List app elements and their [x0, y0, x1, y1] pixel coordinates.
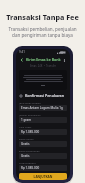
button[interactable]: Jumlah Penukaran — [19, 113, 67, 123]
staticText: Rp 1.085.000 — [21, 166, 65, 170]
staticText: dan pengiriman tanpa biaya — [0, 32, 85, 38]
button[interactable]: Total Diterima — [19, 161, 67, 171]
staticText: LANJUTKAN — [19, 175, 67, 179]
staticText: 9:41 — [19, 50, 25, 54]
staticText: Transaksi Tanpa Fee — [0, 12, 85, 22]
staticText: Biaya Admin — [19, 137, 67, 140]
button[interactable]: Jenis Emas Terpilih — [19, 101, 67, 111]
staticText: Nilai Tukar — [19, 125, 67, 128]
staticText: Kirim Emas ke Bank — [26, 57, 61, 62]
staticText: Gratis — [21, 142, 65, 146]
staticText: Biaya Pengiriman — [19, 149, 67, 152]
button[interactable]: More options — [61, 57, 67, 63]
button[interactable]: Biaya Pengiriman — [19, 149, 67, 159]
staticText: 1 gram — [21, 118, 65, 122]
button[interactable] — [19, 70, 67, 90]
staticText: Jenis Emas Terpilih — [19, 101, 67, 104]
button[interactable]: LANJUTKAN — [19, 173, 67, 180]
button[interactable]: Back — [19, 57, 25, 63]
staticText: Rp 1.085.000 — [21, 130, 65, 134]
staticText: Jumlah Penukaran — [19, 113, 67, 116]
staticText: Emas Antam Logam Mulia 1g — [21, 106, 65, 110]
staticText: Konfirmasi Penukaran — [25, 93, 67, 98]
staticText: Total Diterima — [19, 161, 67, 164]
button[interactable]: Biaya Admin — [19, 137, 67, 147]
staticText: Transaksi pembelian, penjualan — [0, 26, 85, 32]
staticText: Emas 24K • Transfer — [16, 64, 70, 68]
button[interactable]: Nilai Tukar — [19, 125, 67, 135]
staticText: Gratis — [21, 154, 65, 158]
